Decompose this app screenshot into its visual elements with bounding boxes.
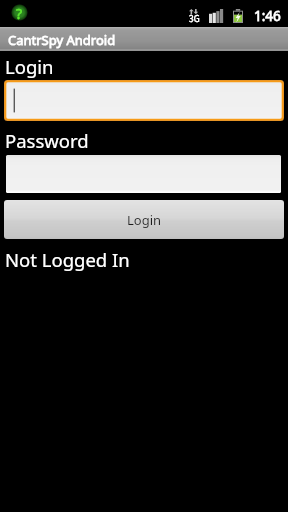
button[interactable]: Password input [6, 155, 281, 193]
staticText: 3G [189, 13, 200, 24]
staticText: Login [127, 211, 162, 229]
staticText: CantrSpy Android [8, 31, 116, 49]
staticText: Password [5, 128, 89, 153]
button[interactable]: Login input [4, 80, 284, 121]
staticText: 1:46 [254, 7, 281, 25]
other: Notification [11, 4, 28, 21]
button[interactable]: Login [4, 200, 284, 239]
staticText: ? [16, 4, 23, 21]
staticText: Login [5, 54, 54, 79]
staticText: Not Logged In [5, 247, 130, 272]
